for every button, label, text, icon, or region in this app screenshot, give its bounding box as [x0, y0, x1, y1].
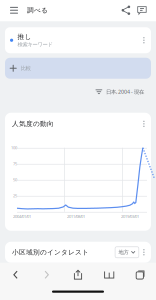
button[interactable]: 日本, 2004 - 現在 [92, 85, 147, 99]
button[interactable]: 地方 [115, 247, 139, 258]
staticText: 人気度の動向 [12, 120, 54, 128]
button[interactable]: Feedback [134, 1, 150, 19]
staticText: 100 [11, 145, 17, 150]
button[interactable]: Menu [6, 1, 22, 19]
button[interactable]: Back [13, 270, 18, 279]
staticText: 75 [13, 161, 17, 166]
button[interactable]: Forward [44, 270, 49, 279]
button[interactable]: Bookmarks [104, 270, 114, 279]
staticText: 2004/01/01 [13, 214, 31, 219]
button[interactable]: Tabs [136, 270, 145, 279]
staticText: 推し [18, 33, 32, 41]
button[interactable]: Chart options [143, 120, 145, 127]
staticText: 50 [13, 177, 17, 182]
staticText: 調べる [27, 6, 48, 14]
staticText: 小区域別のインタレスト [12, 248, 89, 256]
button[interactable]: Region options [143, 249, 145, 255]
button[interactable]: 比較 [5, 58, 151, 79]
staticText: 日本, 2004 - 現在 [106, 88, 144, 95]
staticText: 2019/03/01 [121, 214, 139, 219]
staticText: 2011/08/01 [67, 214, 85, 219]
button[interactable]: Share [118, 1, 134, 19]
staticText: 地方 [119, 249, 129, 256]
button[interactable]: 推し [5, 27, 151, 53]
staticText: 検索キーワード [18, 41, 53, 48]
staticText: 25 [13, 193, 17, 198]
button[interactable]: Share [73, 270, 82, 280]
staticText: 比較 [21, 65, 31, 72]
